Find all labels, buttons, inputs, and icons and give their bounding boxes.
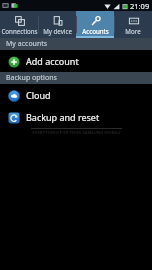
button[interactable]: My device <box>38 11 76 38</box>
button[interactable]: Add account <box>0 50 152 72</box>
staticText: Backup and reset <box>26 111 100 123</box>
button[interactable]: Cloud <box>0 84 152 106</box>
staticText: More <box>125 27 141 35</box>
staticText: My accounts <box>6 39 48 49</box>
staticText: My device <box>43 27 72 35</box>
staticText: Cloud <box>26 89 51 101</box>
staticText: 21:09 <box>130 1 150 11</box>
staticText: Backup options <box>6 73 57 83</box>
staticText: Add account <box>26 55 79 67</box>
staticText: Accounts <box>82 27 109 35</box>
button[interactable]: Backup and reset <box>0 106 152 128</box>
staticText: EVERYTHING FOR YOUR SAMSUNG MOBILE <box>32 130 121 136</box>
button[interactable]: Connections <box>0 11 38 38</box>
staticText: Connections <box>1 27 38 35</box>
button[interactable]: More <box>114 11 152 38</box>
button[interactable]: Accounts <box>76 11 114 38</box>
